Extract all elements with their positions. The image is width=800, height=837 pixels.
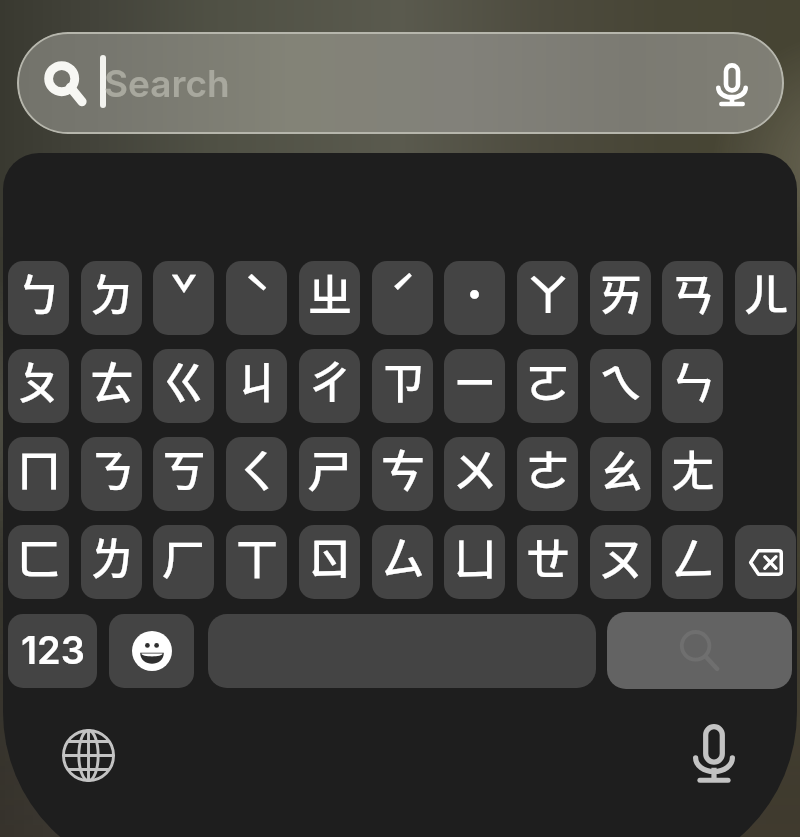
- button[interactable]: ㄣ: [662, 349, 723, 423]
- staticText: ㄥ: [670, 525, 716, 589]
- staticText: ㄗ: [380, 349, 426, 413]
- button[interactable]: 123: [8, 614, 97, 688]
- button[interactable]: ㄑ: [226, 437, 287, 511]
- button[interactable]: ㄋ: [81, 437, 142, 511]
- button[interactable]: ㄝ: [517, 525, 578, 599]
- button[interactable]: ㄔ: [299, 349, 360, 423]
- staticText: ˋ: [243, 261, 271, 325]
- button[interactable]: ˊ: [372, 261, 433, 335]
- button[interactable]: ㄊ: [81, 349, 142, 423]
- staticText: ㄒ: [234, 525, 280, 589]
- button[interactable]: ㄎ: [153, 437, 214, 511]
- button[interactable]: ㄍ: [153, 349, 214, 423]
- staticText: ㄞ: [598, 261, 644, 325]
- button[interactable]: Switch language: [48, 715, 128, 795]
- button[interactable]: ㄇ: [8, 437, 69, 511]
- staticText: ㄏ: [161, 525, 207, 589]
- button[interactable]: Emoji: [109, 614, 194, 688]
- button[interactable]: Search: [17, 32, 784, 134]
- button[interactable]: ㄡ: [590, 525, 651, 599]
- staticText: ㄩ: [452, 525, 498, 589]
- staticText: ㄧ: [452, 349, 498, 413]
- button[interactable]: Backspace: [735, 525, 796, 599]
- staticText: ㄜ: [525, 437, 571, 501]
- staticText: ㄝ: [525, 525, 571, 589]
- staticText: ㄠ: [598, 437, 644, 501]
- button[interactable]: ㄙ: [372, 525, 433, 599]
- staticText: ㄕ: [307, 437, 353, 501]
- staticText: ˊ: [389, 261, 417, 325]
- button[interactable]: ㄒ: [226, 525, 287, 599]
- button[interactable]: ㄐ: [226, 349, 287, 423]
- button[interactable]: ㄏ: [153, 525, 214, 599]
- staticText: ㄋ: [89, 437, 135, 501]
- button[interactable]: ㄨ: [444, 437, 505, 511]
- staticText: ㄑ: [234, 437, 280, 501]
- button[interactable]: ˙: [444, 261, 505, 335]
- staticText: ㄦ: [743, 261, 789, 325]
- button[interactable]: ㄦ: [735, 261, 796, 335]
- staticText: ㄛ: [525, 349, 571, 413]
- button[interactable]: ㄠ: [590, 437, 651, 511]
- button[interactable]: ㄟ: [590, 349, 651, 423]
- staticText: ˙: [463, 261, 486, 325]
- staticText: ˇ: [170, 261, 198, 325]
- staticText: ㄤ: [670, 437, 716, 501]
- button[interactable]: ㄧ: [444, 349, 505, 423]
- staticText: ㄔ: [307, 349, 353, 413]
- staticText: Search: [104, 61, 230, 106]
- button[interactable]: Voice input: [674, 713, 754, 793]
- staticText: ㄇ: [16, 437, 62, 501]
- button[interactable]: ㄘ: [372, 437, 433, 511]
- staticText: ㄨ: [452, 437, 498, 501]
- staticText: ㄅ: [16, 261, 62, 325]
- button[interactable]: ㄜ: [517, 437, 578, 511]
- staticText: ㄐ: [234, 349, 280, 413]
- button[interactable]: ㄌ: [81, 525, 142, 599]
- staticText: ㄘ: [380, 437, 426, 501]
- button[interactable]: ㄖ: [299, 525, 360, 599]
- staticText: 123: [21, 627, 85, 673]
- button[interactable]: ˇ: [153, 261, 214, 335]
- button[interactable]: Search: [607, 612, 792, 689]
- staticText: ㄖ: [307, 525, 353, 589]
- staticText: ㄌ: [89, 525, 135, 589]
- staticText: ㄎ: [161, 437, 207, 501]
- button[interactable]: ㄕ: [299, 437, 360, 511]
- button[interactable]: ㄆ: [8, 349, 69, 423]
- button[interactable]: ㄚ: [517, 261, 578, 335]
- button[interactable]: ㄅ: [8, 261, 69, 335]
- staticText: ㄊ: [89, 349, 135, 413]
- staticText: ㄡ: [598, 525, 644, 589]
- button[interactable]: Voice search: [697, 49, 767, 119]
- staticText: ㄢ: [670, 261, 716, 325]
- button[interactable]: ㄩ: [444, 525, 505, 599]
- button[interactable]: ㄈ: [8, 525, 69, 599]
- button[interactable]: ㄞ: [590, 261, 651, 335]
- staticText: ㄟ: [598, 349, 644, 413]
- button[interactable]: ㄤ: [662, 437, 723, 511]
- button[interactable]: ㄉ: [81, 261, 142, 335]
- button[interactable]: Space: [208, 614, 596, 688]
- staticText: ㄈ: [16, 525, 62, 589]
- button[interactable]: ˋ: [226, 261, 287, 335]
- button[interactable]: ㄛ: [517, 349, 578, 423]
- button[interactable]: ㄥ: [662, 525, 723, 599]
- staticText: ㄚ: [525, 261, 571, 325]
- staticText: ㄉ: [89, 261, 135, 325]
- staticText: ㄙ: [380, 525, 426, 589]
- button[interactable]: ㄗ: [372, 349, 433, 423]
- staticText: ㄓ: [307, 261, 353, 325]
- staticText: ㄆ: [16, 349, 62, 413]
- staticText: ㄣ: [670, 349, 716, 413]
- button[interactable]: ㄢ: [662, 261, 723, 335]
- button[interactable]: ㄓ: [299, 261, 360, 335]
- staticText: ㄍ: [161, 349, 207, 413]
